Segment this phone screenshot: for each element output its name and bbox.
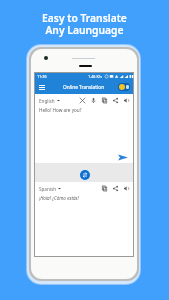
staticText: Spanish [39,186,56,192]
button[interactable]: Share [112,97,119,104]
staticText: ¡Hola! ¿Cómo estás! [39,195,79,201]
button[interactable]: Copy translation [101,185,108,192]
button[interactable]: Swap languages [80,170,90,180]
staticText: English [39,98,55,104]
button[interactable]: Speak translation [123,185,130,192]
staticText: Easy to Translate [42,11,127,25]
button[interactable]: Speak [123,97,130,104]
button[interactable]: Voice input [90,97,97,104]
button[interactable]: Copy [101,97,108,104]
button[interactable]: Share translation [112,185,119,192]
button[interactable]: Send [117,153,129,162]
staticText: Any Launguage [45,23,124,37]
button[interactable]: Open navigation menu [37,82,47,92]
button[interactable]: Clear [79,97,86,104]
button[interactable]: Go premium [118,83,130,91]
staticText: Online Translation [63,84,105,91]
staticText: 11:35 [37,74,47,79]
staticText: Hello! How are you? [39,107,82,113]
staticText: 1.46 K/s [88,74,103,79]
